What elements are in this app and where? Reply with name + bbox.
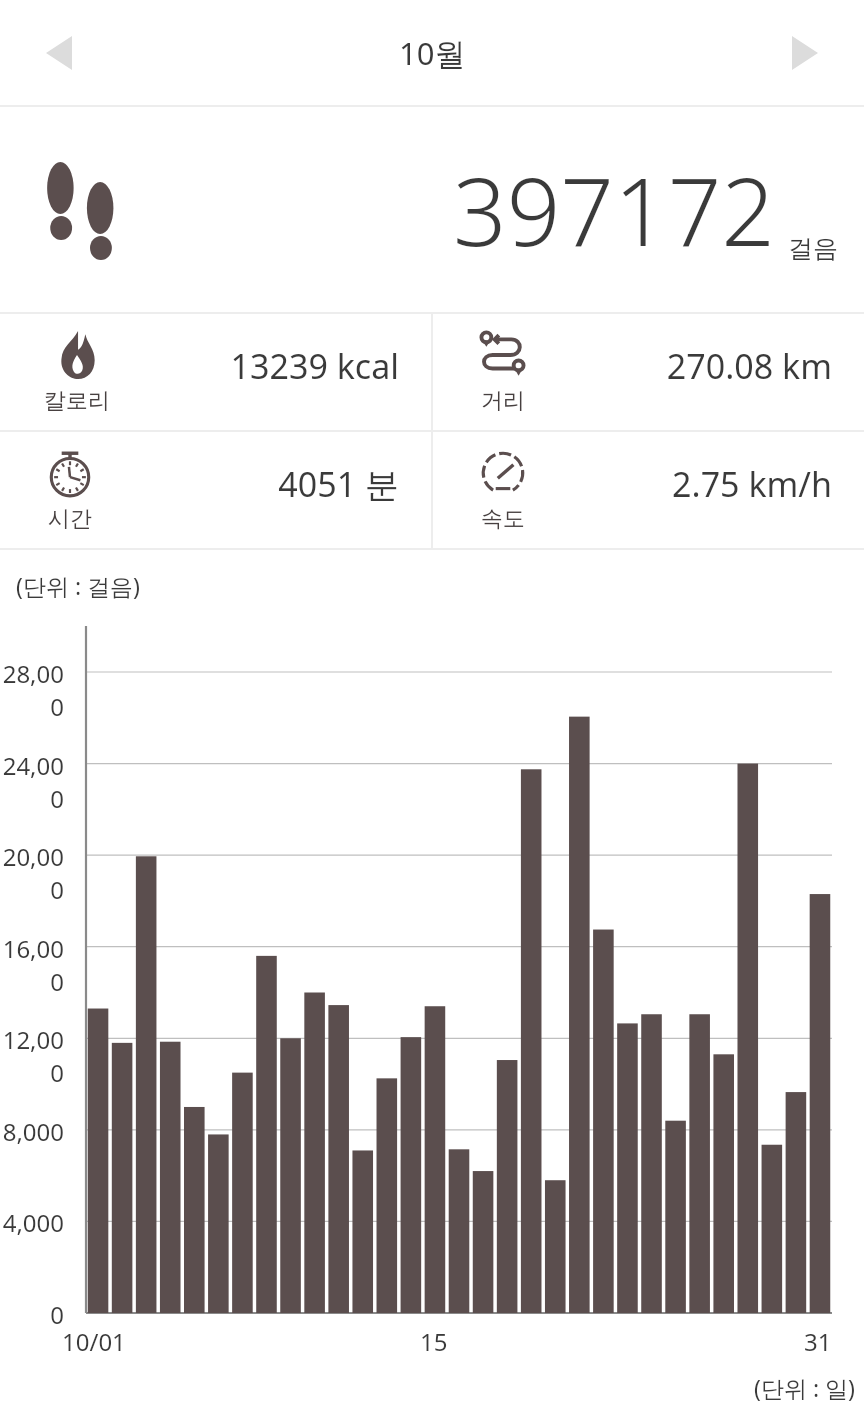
staticText: 거리 — [481, 387, 525, 415]
button[interactable]: 속도 — [433, 432, 864, 548]
staticText: 4,000 — [0, 1206, 64, 1239]
staticText: 270.08 km — [666, 343, 832, 389]
button[interactable]: 칼로리 — [0, 314, 431, 430]
staticText: 시간 — [48, 505, 92, 533]
staticText: 칼로리 — [44, 387, 110, 415]
staticText: 15 — [420, 1325, 448, 1358]
staticText: 걸음 — [788, 233, 838, 264]
staticText: 24,000 — [0, 749, 64, 815]
staticText: 16,000 — [0, 932, 64, 998]
staticText: (단위 : 걸음) — [16, 570, 140, 601]
button[interactable]: 397172 — [0, 107, 864, 312]
button[interactable]: Previous month — [28, 22, 90, 84]
button[interactable]: 시간 — [0, 432, 431, 548]
staticText: 0 — [0, 1298, 64, 1331]
staticText: 12,000 — [0, 1023, 64, 1089]
staticText: 10월 — [399, 32, 466, 74]
staticText: 2.75 km/h — [672, 461, 832, 507]
staticText: 31 — [804, 1325, 832, 1358]
staticText: 28,000 — [0, 657, 64, 723]
staticText: (단위 : 일) — [754, 1372, 855, 1403]
staticText: 10/01 — [62, 1325, 126, 1358]
staticText: 4051 분 — [278, 461, 399, 507]
button[interactable]: Next month — [774, 22, 836, 84]
staticText: 20,000 — [0, 840, 64, 906]
staticText: 8,000 — [0, 1115, 64, 1148]
button[interactable]: 거리 — [433, 314, 864, 430]
staticText: 속도 — [481, 505, 525, 533]
staticText: 13239 kcal — [230, 343, 399, 389]
staticText: 397172 — [453, 146, 776, 274]
